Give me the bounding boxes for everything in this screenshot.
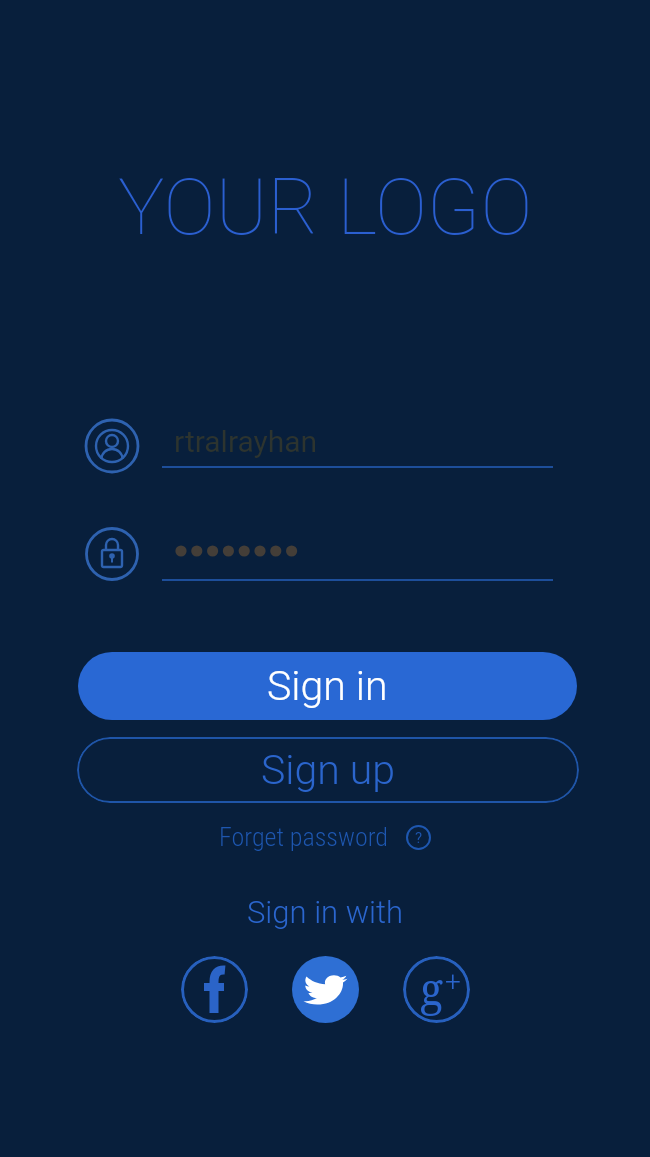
button[interactable] — [181, 956, 248, 1023]
button[interactable]: Sign up — [77, 737, 579, 803]
staticText: ? — [415, 829, 423, 847]
button[interactable]: Forget password — [219, 822, 431, 852]
button[interactable]: Sign in — [78, 652, 577, 720]
staticText: g — [420, 959, 444, 1018]
button[interactable] — [162, 529, 553, 581]
button[interactable] — [292, 956, 359, 1023]
staticText: YOUR LOGO — [118, 162, 533, 253]
button[interactable]: rtralrayhan — [162, 416, 553, 468]
staticText: rtralrayhan — [174, 424, 318, 459]
staticText: + — [445, 965, 461, 998]
button[interactable]: g — [403, 956, 470, 1023]
staticText: Sign up — [261, 746, 396, 794]
staticText: Forget password — [219, 822, 389, 852]
staticText: Sign in — [267, 662, 388, 710]
staticText: Sign in with — [247, 894, 404, 930]
